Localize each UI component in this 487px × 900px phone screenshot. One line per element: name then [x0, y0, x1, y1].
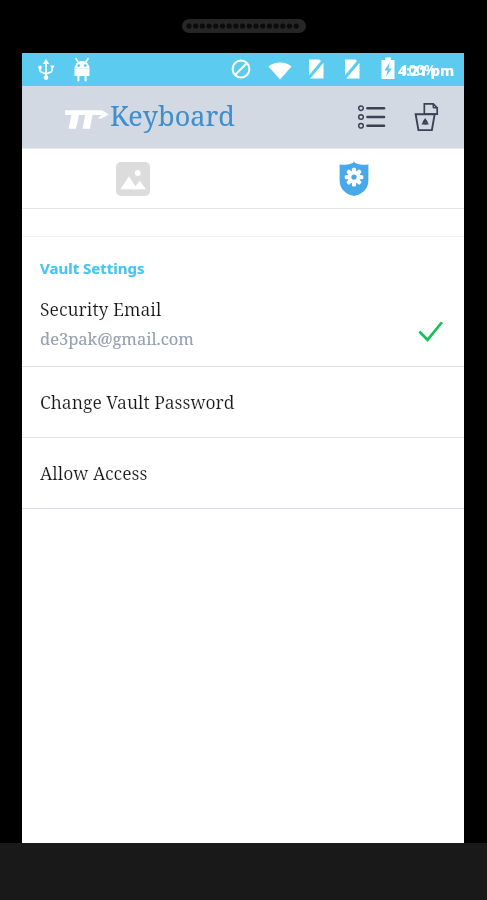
staticText: Change Vault Password: [40, 390, 235, 414]
button[interactable]: Gallery: [22, 149, 243, 208]
button[interactable]: Vault settings: [243, 149, 464, 208]
staticText: Allow Access: [40, 461, 148, 485]
staticText: 4:21 pm: [398, 60, 455, 80]
button[interactable]: Change Vault Password: [22, 367, 464, 437]
staticText: 100%: [401, 61, 436, 79]
staticText: Security Email: [40, 297, 162, 321]
staticText: Vault Settings: [40, 258, 145, 278]
button[interactable]: Recycle bin: [408, 99, 444, 135]
button[interactable]: Security Email: [22, 297, 464, 366]
staticText: Keyboard: [110, 97, 235, 134]
button[interactable]: List view: [354, 100, 388, 134]
staticText: de3pak@gmail.com: [40, 327, 194, 349]
button[interactable]: Allow Access: [22, 438, 464, 508]
